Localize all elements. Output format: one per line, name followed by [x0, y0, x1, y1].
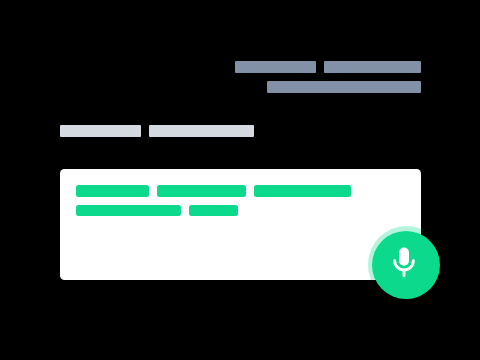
button[interactable]: Speak, voice input: [372, 231, 440, 299]
button[interactable]: Assistant result card: [60, 169, 421, 280]
